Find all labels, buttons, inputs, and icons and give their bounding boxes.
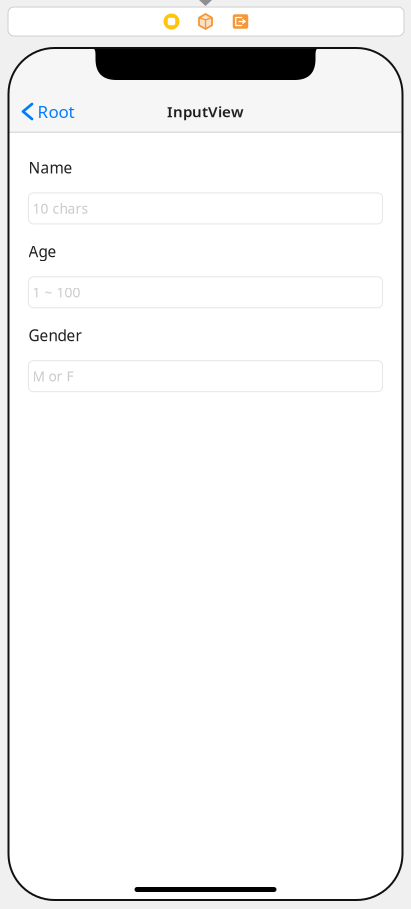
button[interactable]: Root (16, 94, 79, 129)
button[interactable]: M or F (28, 361, 382, 392)
staticText: InputView (167, 101, 244, 122)
button[interactable]: Live preview (156, 8, 186, 34)
button[interactable]: Preview variants (190, 8, 220, 34)
button[interactable]: 10 chars (28, 193, 382, 224)
staticText: Root (37, 100, 74, 123)
staticText: Name (28, 157, 72, 178)
staticText: Gender (28, 325, 81, 346)
staticText: Age (28, 241, 56, 262)
staticText: 1 ~ 100 (32, 283, 80, 302)
button[interactable]: Open preview in window (225, 8, 255, 34)
staticText: M or F (32, 367, 73, 385)
staticText: 10 chars (32, 199, 88, 218)
button[interactable]: 1 ~ 100 (28, 277, 382, 308)
